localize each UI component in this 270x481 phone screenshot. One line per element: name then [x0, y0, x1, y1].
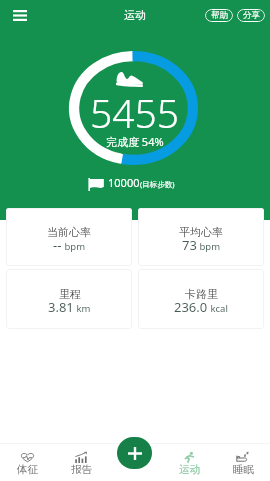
- staticText: 运动: [179, 463, 200, 476]
- staticText: bpm: [197, 240, 221, 253]
- staticText: --: [53, 236, 62, 254]
- button[interactable]: Menu: [6, 0, 33, 30]
- staticText: 平均心率: [179, 225, 223, 239]
- button[interactable]: 体征: [0, 443, 54, 481]
- staticText: 报告: [71, 463, 92, 476]
- staticText: 完成度 54%: [106, 134, 164, 149]
- staticText: 卡路里: [185, 287, 218, 301]
- button[interactable]: 帮助: [205, 9, 233, 22]
- staticText: bpm: [62, 240, 86, 253]
- button[interactable]: 运动: [162, 443, 216, 481]
- staticText: 236.0: [174, 298, 208, 316]
- button[interactable]: 睡眠: [216, 443, 270, 481]
- staticText: 分享: [243, 10, 260, 21]
- staticText: (目标步数): [140, 179, 175, 189]
- staticText: 当前心率: [47, 225, 91, 239]
- staticText: 睡眠: [233, 463, 254, 476]
- staticText: 里程: [59, 287, 81, 301]
- staticText: 体征: [17, 463, 38, 476]
- button[interactable]: 卡路里: [138, 269, 264, 329]
- button[interactable]: 分享: [237, 9, 265, 22]
- staticText: 3.81: [48, 298, 74, 316]
- button[interactable]: 平均心率: [138, 208, 264, 266]
- button[interactable]: 报告: [54, 443, 108, 481]
- staticText: km: [74, 302, 91, 315]
- staticText: 10000: [108, 175, 140, 190]
- staticText: kcal: [208, 302, 228, 315]
- staticText: 运动: [124, 8, 146, 22]
- staticText: 5455: [90, 86, 180, 139]
- staticText: 73: [182, 236, 197, 254]
- button[interactable]: 里程: [6, 269, 132, 329]
- button[interactable]: Add: [117, 437, 152, 469]
- staticText: 帮助: [211, 10, 228, 21]
- button[interactable]: 当前心率: [6, 208, 132, 266]
